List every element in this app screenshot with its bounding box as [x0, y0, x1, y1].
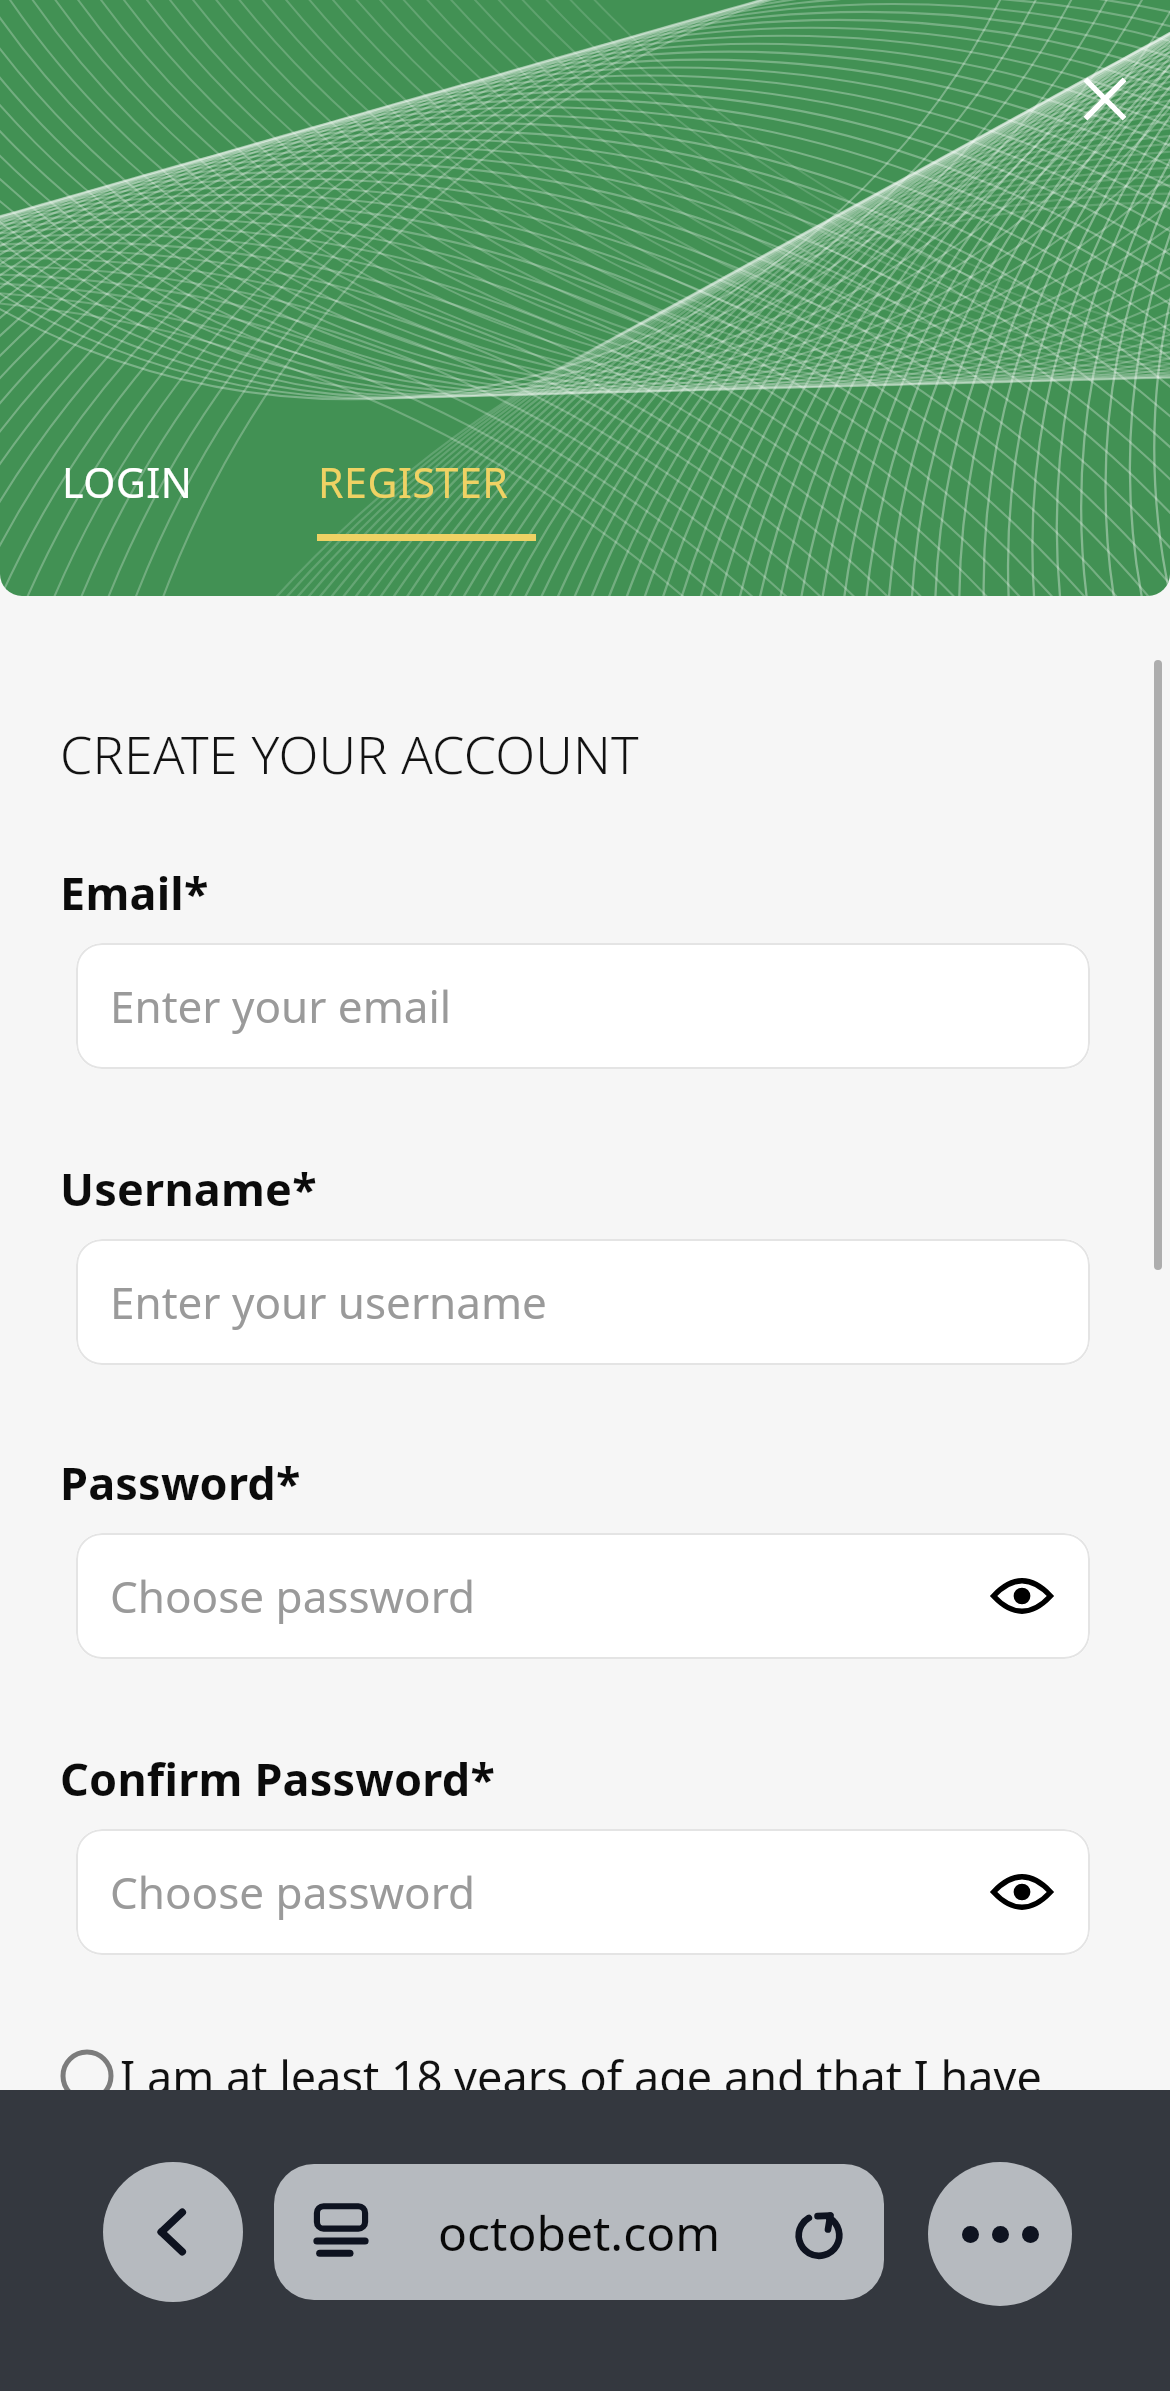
staticText: Enter your username	[110, 1272, 547, 1332]
staticText: Password*	[60, 1452, 301, 1513]
staticText: Choose password	[110, 1566, 476, 1626]
staticText: LOGIN	[62, 454, 193, 510]
staticText: CREATE YOUR ACCOUNT	[60, 718, 639, 789]
staticText: Confirm Password*	[60, 1748, 495, 1809]
button[interactable]: Choose password	[76, 1533, 1090, 1659]
button[interactable]: Close	[1050, 44, 1160, 154]
button[interactable]: LOGIN	[40, 452, 256, 558]
button[interactable]: More options	[928, 2162, 1072, 2306]
staticText: REGISTER	[318, 454, 509, 510]
button[interactable]: Page settings	[302, 2193, 380, 2271]
staticText: Enter your email	[110, 976, 452, 1036]
staticText: octobet.com	[438, 2200, 721, 2265]
button[interactable]: Back	[103, 2162, 243, 2302]
button[interactable]: I am at least 18 years of age and that I…	[60, 2036, 1110, 2116]
button[interactable]: Show password	[976, 1550, 1068, 1642]
staticText: Username*	[60, 1158, 317, 1219]
button[interactable]: Enter your username	[76, 1239, 1090, 1365]
button[interactable]: Choose password	[76, 1829, 1090, 1955]
button[interactable]: Reload	[780, 2193, 858, 2271]
staticText: Email*	[60, 862, 209, 923]
staticText: I am at least 18 years of age and that I…	[120, 2046, 1042, 2107]
button[interactable]: Page settings	[274, 2164, 884, 2300]
staticText: Choose password	[110, 1862, 476, 1922]
button[interactable]: Enter your email	[76, 943, 1090, 1069]
button[interactable]: REGISTER	[296, 452, 558, 558]
button[interactable]: Show password	[976, 1846, 1068, 1938]
